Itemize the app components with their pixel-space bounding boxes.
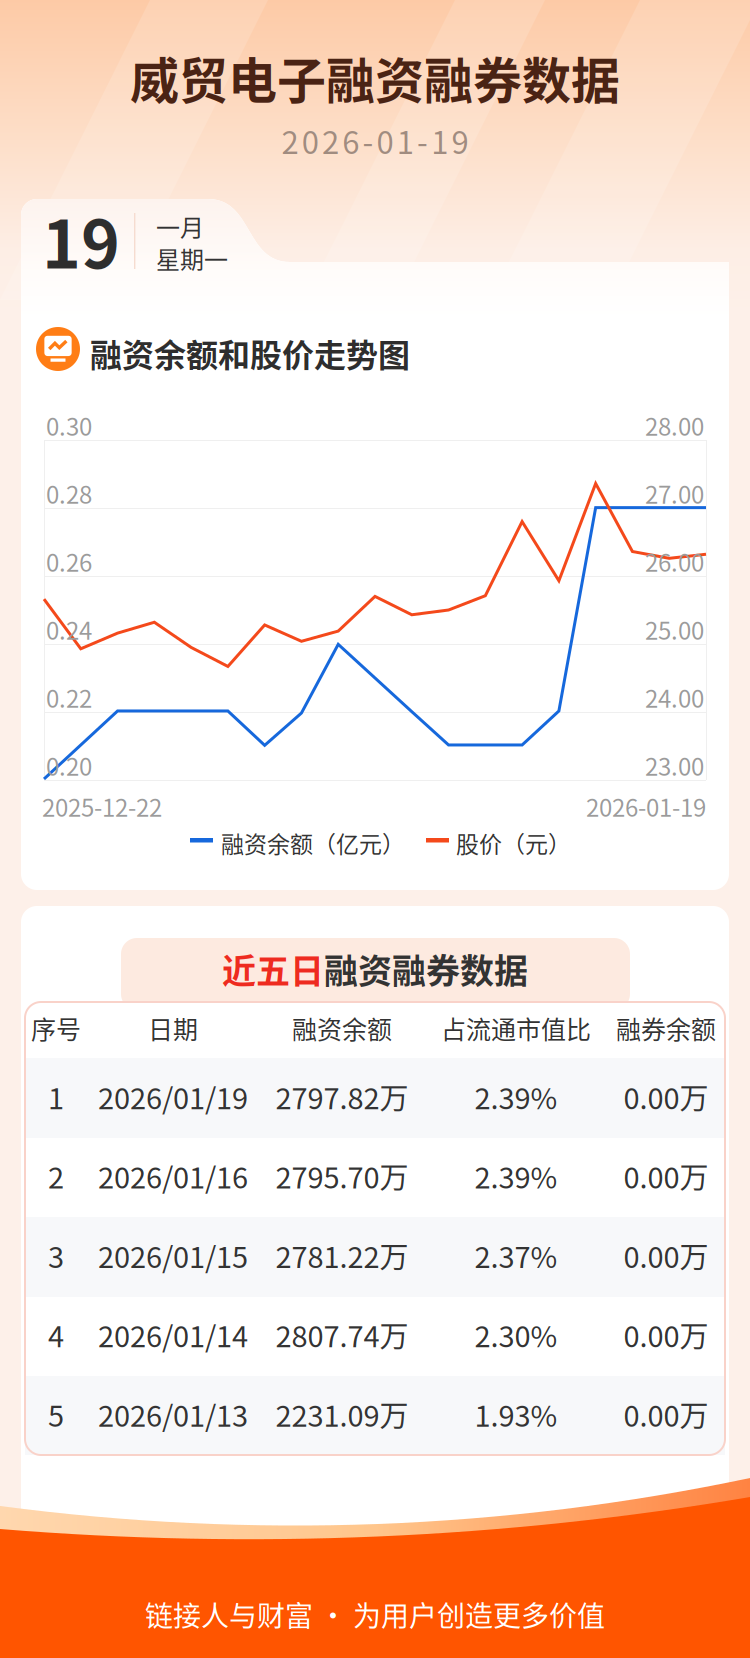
staticText: 0.00万 bbox=[623, 1314, 708, 1356]
staticText: 占流通市值比 bbox=[441, 1010, 591, 1046]
staticText: 融券余额 bbox=[616, 1010, 716, 1046]
staticText: 2026/01/13 bbox=[98, 1393, 248, 1435]
staticText: 日期 bbox=[148, 1010, 198, 1046]
staticText: 24.00 bbox=[645, 680, 704, 715]
staticText: 0.00万 bbox=[623, 1234, 708, 1276]
staticText: 2807.74万 bbox=[275, 1314, 408, 1356]
staticText: 2 bbox=[48, 1155, 64, 1197]
staticText: 融资余额和股价走势图 bbox=[90, 330, 410, 376]
staticText: 0.00万 bbox=[623, 1075, 708, 1117]
staticText: 融资融券数据 bbox=[324, 944, 528, 993]
staticText: 2.39% bbox=[474, 1155, 557, 1197]
staticText: 0.28 bbox=[46, 476, 92, 511]
staticText: 4 bbox=[48, 1314, 64, 1356]
staticText: 0.20 bbox=[46, 748, 92, 783]
staticText: 2026-01-19 bbox=[586, 789, 706, 824]
staticText: 1 bbox=[48, 1075, 64, 1117]
staticText: 2781.22万 bbox=[275, 1234, 408, 1276]
staticText: 19 bbox=[42, 192, 120, 288]
staticText: 0.00万 bbox=[623, 1393, 708, 1435]
staticText: 2025-12-22 bbox=[42, 789, 162, 824]
staticText: 一月 bbox=[156, 209, 204, 244]
staticText: 近五日 bbox=[222, 944, 324, 993]
staticText: 2797.82万 bbox=[275, 1075, 408, 1117]
staticText: 26.00 bbox=[645, 544, 704, 579]
staticText: 2026/01/14 bbox=[98, 1314, 248, 1356]
staticText: 1.93% bbox=[474, 1393, 557, 1435]
staticText: 23.00 bbox=[645, 748, 704, 783]
staticText: 28.00 bbox=[645, 408, 704, 443]
staticText: 2026-01-19 bbox=[281, 118, 468, 163]
staticText: 2026/01/16 bbox=[98, 1155, 248, 1197]
staticText: 2.39% bbox=[474, 1075, 557, 1117]
staticText: 0.22 bbox=[46, 680, 92, 715]
staticText: 星期一 bbox=[156, 241, 228, 276]
staticText: 序号 bbox=[31, 1010, 81, 1046]
staticText: 2026/01/15 bbox=[98, 1234, 248, 1276]
staticText: 2026/01/19 bbox=[98, 1075, 248, 1117]
staticText: 0.26 bbox=[46, 544, 92, 579]
staticText: 2.37% bbox=[474, 1234, 557, 1276]
staticText: 0.30 bbox=[46, 408, 92, 443]
staticText: 2.30% bbox=[474, 1314, 557, 1356]
staticText: 0.24 bbox=[46, 612, 92, 647]
staticText: 威贸电子融资融券数据 bbox=[130, 42, 620, 113]
staticText: 2795.70万 bbox=[275, 1155, 408, 1197]
staticText: 链接人与财富 · 为用户创造更多价值 bbox=[145, 1594, 605, 1634]
staticText: 融资余额 bbox=[292, 1010, 392, 1046]
staticText: 25.00 bbox=[645, 612, 704, 647]
staticText: 5 bbox=[48, 1393, 64, 1435]
staticText: 3 bbox=[48, 1234, 64, 1276]
staticText: 0.00万 bbox=[623, 1155, 708, 1197]
staticText: 27.00 bbox=[645, 476, 704, 511]
staticText: 2231.09万 bbox=[275, 1393, 408, 1435]
staticText: 股价（元） bbox=[456, 826, 571, 859]
staticText: 融资余额（亿元） bbox=[221, 826, 405, 859]
